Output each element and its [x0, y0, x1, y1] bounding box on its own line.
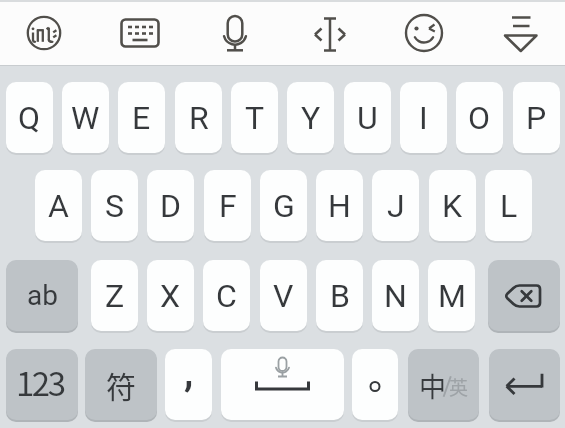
button[interactable]: T: [231, 82, 278, 153]
staticText: V: [273, 277, 294, 315]
button[interactable]: R: [175, 82, 222, 153]
staticText: ,: [184, 351, 194, 396]
staticText: A: [48, 187, 69, 225]
button[interactable]: S: [91, 170, 138, 241]
button[interactable]: X: [147, 260, 194, 331]
staticText: K: [442, 187, 463, 225]
button[interactable]: ,: [165, 349, 212, 420]
button[interactable]: Q: [6, 82, 53, 153]
button[interactable]: M: [428, 260, 475, 331]
staticText: I: [419, 99, 428, 137]
staticText: J: [387, 187, 405, 225]
button[interactable]: I: [400, 82, 447, 153]
button[interactable]: [352, 349, 398, 420]
staticText: C: [216, 277, 237, 315]
staticText: P: [526, 99, 547, 137]
button[interactable]: 中: [408, 349, 479, 420]
button[interactable]: [112, 5, 168, 61]
button[interactable]: E: [118, 82, 165, 153]
staticText: U: [357, 99, 378, 137]
button[interactable]: [489, 349, 560, 420]
button[interactable]: L: [485, 170, 532, 241]
staticText: D: [160, 187, 181, 225]
staticText: 英: [449, 373, 469, 401]
button[interactable]: O: [456, 82, 503, 153]
button[interactable]: W: [62, 82, 109, 153]
staticText: ab: [27, 279, 58, 312]
staticText: Q: [18, 99, 41, 137]
staticText: L: [500, 187, 518, 225]
staticText: 123: [16, 358, 64, 406]
button[interactable]: [221, 349, 344, 420]
staticText: M: [438, 277, 466, 315]
staticText: T: [245, 99, 265, 137]
button[interactable]: P: [513, 82, 560, 153]
staticText: 符: [106, 363, 136, 406]
staticText: O: [468, 99, 491, 137]
staticText: E: [132, 99, 151, 137]
button[interactable]: [16, 5, 72, 61]
button[interactable]: Z: [91, 260, 138, 331]
staticText: S: [105, 187, 124, 225]
button[interactable]: D: [147, 170, 194, 241]
staticText: B: [330, 277, 350, 315]
staticText: W: [71, 99, 100, 137]
button[interactable]: [493, 5, 549, 61]
button[interactable]: ab: [6, 260, 78, 331]
button[interactable]: [396, 5, 452, 61]
button[interactable]: H: [316, 170, 363, 241]
staticText: G: [273, 187, 295, 225]
button[interactable]: J: [372, 170, 419, 241]
button[interactable]: [302, 5, 358, 61]
button[interactable]: K: [429, 170, 476, 241]
button[interactable]: Y: [287, 82, 334, 153]
staticText: X: [160, 277, 181, 315]
staticText: N: [384, 277, 407, 315]
button[interactable]: [207, 5, 263, 61]
button[interactable]: B: [316, 260, 363, 331]
button[interactable]: F: [204, 170, 251, 241]
staticText: Z: [105, 277, 125, 315]
button[interactable]: 符: [85, 349, 157, 420]
button[interactable]: N: [372, 260, 419, 331]
button[interactable]: [488, 260, 560, 331]
button[interactable]: V: [260, 260, 307, 331]
staticText: H: [328, 187, 351, 225]
staticText: F: [219, 187, 237, 225]
button[interactable]: C: [203, 260, 250, 331]
button[interactable]: A: [35, 170, 82, 241]
staticText: R: [189, 99, 209, 137]
button[interactable]: 123: [6, 349, 78, 420]
staticText: 中: [419, 366, 446, 405]
button[interactable]: U: [344, 82, 391, 153]
button[interactable]: G: [260, 170, 307, 241]
staticText: Y: [301, 99, 321, 137]
